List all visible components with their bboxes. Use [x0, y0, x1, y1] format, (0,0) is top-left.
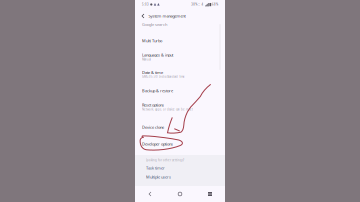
staticText: 4 — [201, 3, 203, 6]
staticText: Manual — [142, 58, 151, 61]
staticText: Developer options — [142, 141, 173, 147]
staticText: Reset options — [142, 102, 164, 108]
staticText: :: — [198, 3, 200, 6]
button[interactable]: Home — [165, 186, 195, 202]
staticText: 38% — [191, 3, 197, 6]
button[interactable]: Languages & input — [135, 48, 225, 65]
staticText: System management — [148, 13, 185, 19]
button[interactable]: Developer options — [135, 135, 225, 153]
button[interactable]: Back — [135, 186, 165, 202]
button[interactable]: Recents — [195, 186, 225, 202]
button[interactable]: Multi Turbo — [135, 33, 225, 49]
staticText: Task timer — [146, 165, 165, 171]
button[interactable]: Task timer — [135, 163, 225, 172]
staticText: Google search — [142, 22, 167, 27]
staticText: Network, apps, or device can be reset — [142, 108, 193, 111]
staticText: GMT+05:30 India Standard Time — [142, 75, 185, 78]
staticText: Languages & input — [142, 52, 173, 58]
button[interactable]: Date & time — [135, 65, 225, 83]
staticText: Looking for other settings? — [146, 158, 184, 162]
button[interactable]: Multiple users — [135, 172, 225, 181]
staticText: Date & time — [142, 70, 163, 75]
staticText: 5:03 — [142, 3, 149, 6]
button[interactable]: Backup & restore — [135, 83, 225, 98]
staticText: Backup & restore — [142, 88, 173, 93]
button[interactable]: Google search — [135, 18, 225, 31]
staticText: Device clone — [142, 124, 164, 130]
button[interactable]: Reset options — [135, 97, 225, 116]
staticText: Multiple users — [146, 174, 171, 180]
button[interactable]: Back — [138, 11, 148, 21]
staticText: 68% — [212, 3, 218, 6]
staticText: Multi Turbo — [142, 38, 162, 43]
button[interactable]: Device clone — [135, 118, 225, 137]
